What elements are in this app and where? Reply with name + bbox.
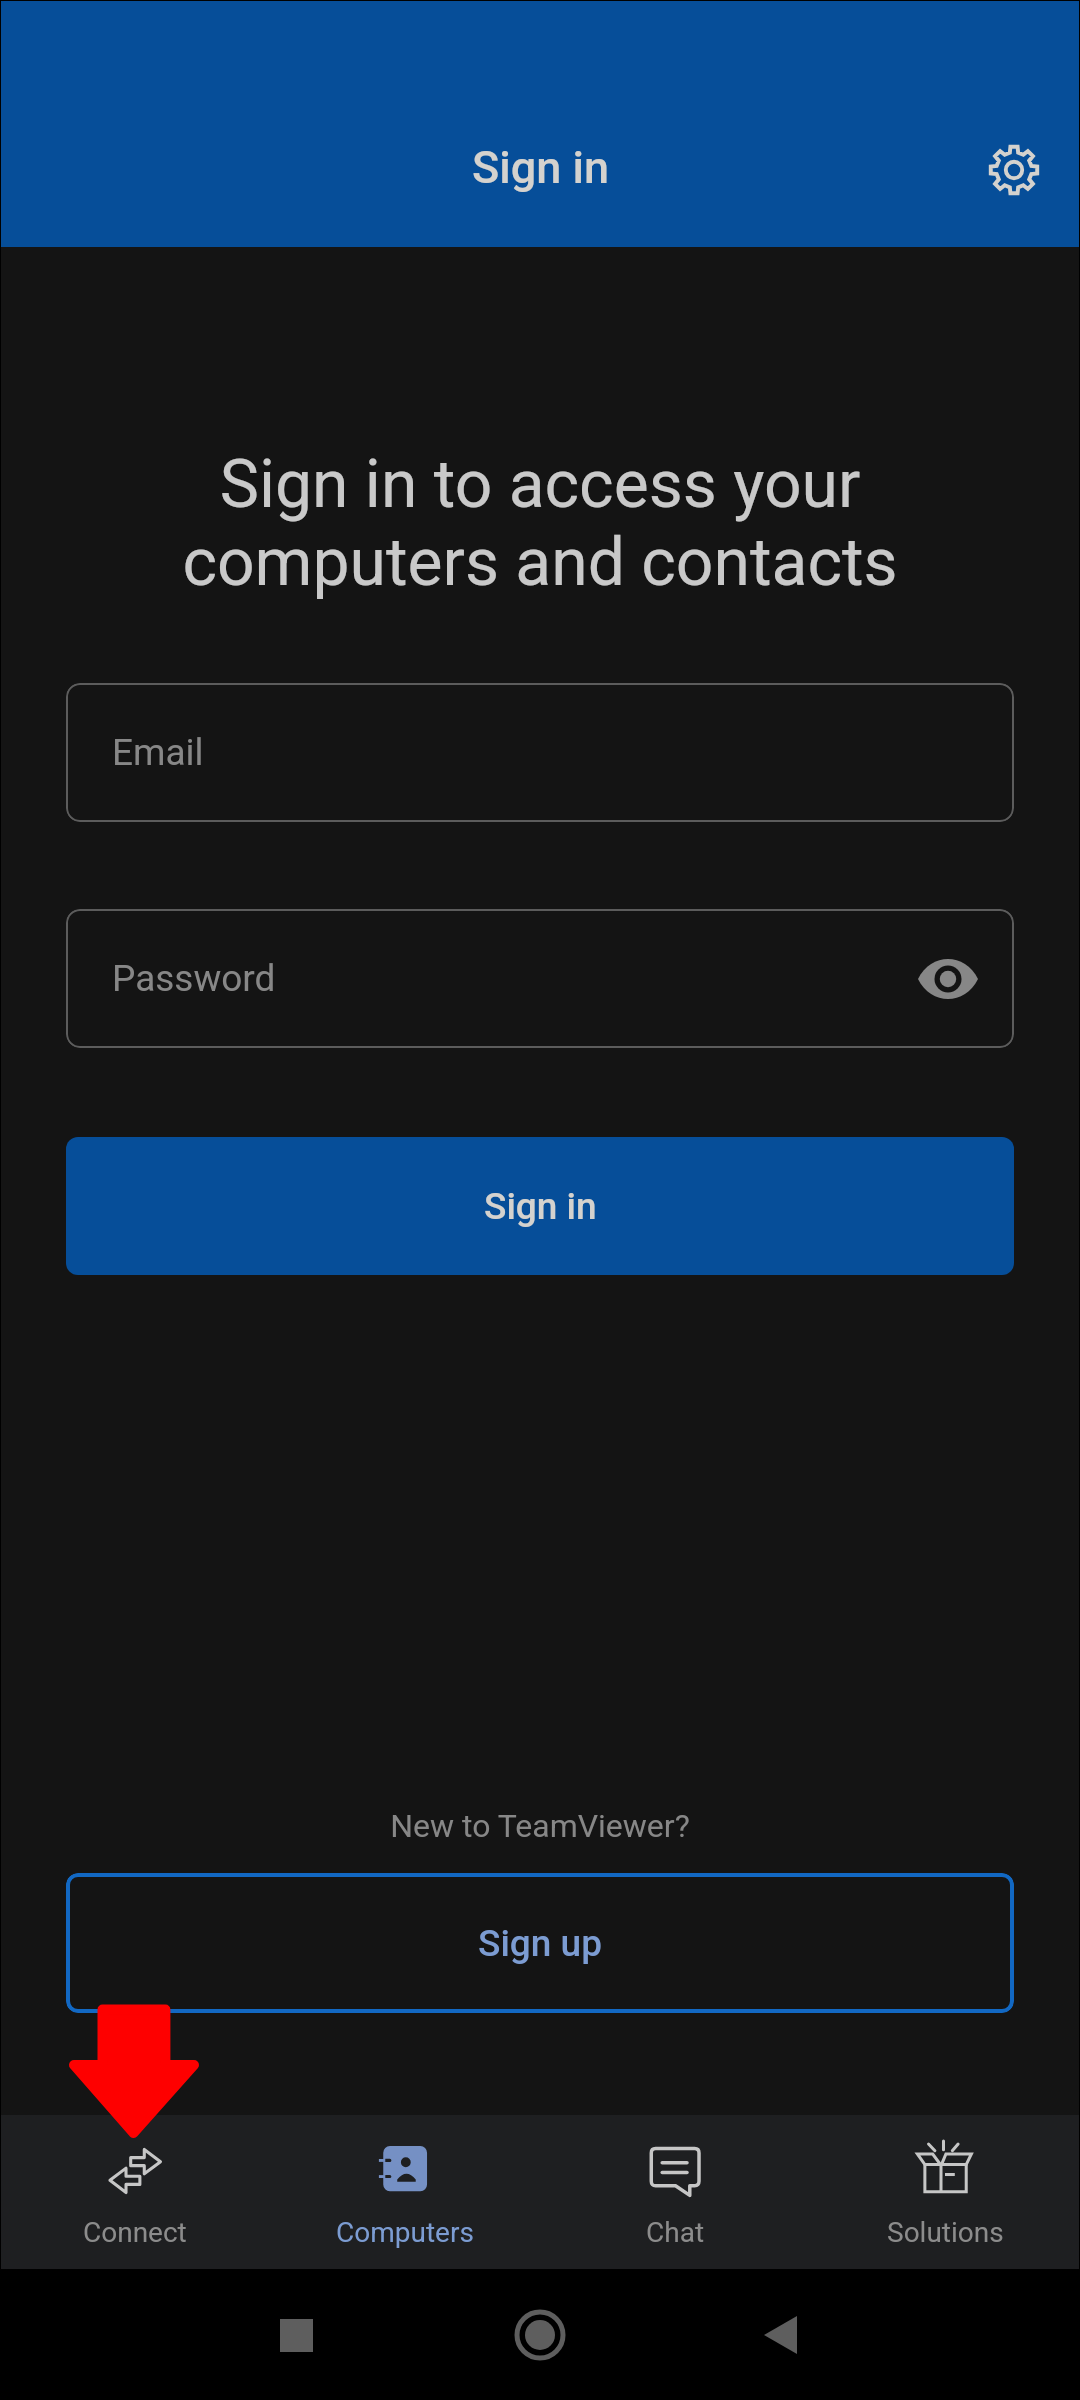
button[interactable]: Sign in xyxy=(66,1137,1014,1275)
staticText: Solutions xyxy=(887,2216,1004,2249)
button[interactable]: Home xyxy=(480,2291,600,2379)
button[interactable]: Chat xyxy=(540,2115,810,2269)
staticText: Password xyxy=(112,957,276,1000)
button[interactable]: Computers xyxy=(270,2115,540,2269)
button[interactable]: Sign up xyxy=(66,1873,1014,2013)
button[interactable]: Show password xyxy=(903,934,993,1024)
button[interactable]: Recent apps xyxy=(236,2291,356,2379)
staticText: Computers xyxy=(336,2216,474,2249)
staticText: Sign in xyxy=(472,141,609,194)
staticText: Connect xyxy=(83,2216,187,2249)
staticText: Sign in xyxy=(484,1185,597,1228)
button[interactable]: Connect xyxy=(0,2115,270,2269)
button[interactable]: Settings xyxy=(966,122,1062,218)
button[interactable]: Email xyxy=(66,683,1014,822)
button[interactable]: Solutions xyxy=(810,2115,1080,2269)
staticText: Sign in to access your computers and con… xyxy=(0,446,1080,601)
staticText: Sign up xyxy=(478,1922,602,1965)
button[interactable]: Password xyxy=(66,909,1014,1048)
staticText: Chat xyxy=(646,2216,705,2249)
staticText: Email xyxy=(112,731,204,774)
staticText: New to TeamViewer? xyxy=(0,1807,1080,1845)
button[interactable]: Back xyxy=(720,2291,840,2379)
